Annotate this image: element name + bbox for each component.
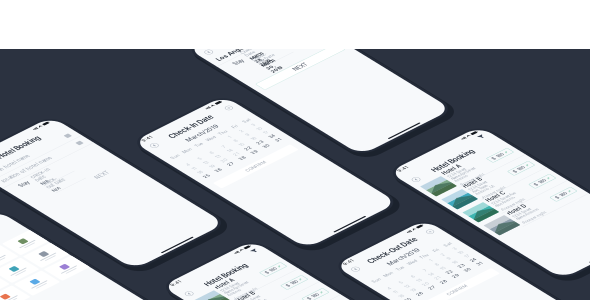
staticText: 8: [207, 209, 211, 216]
staticText: 27: [173, 236, 180, 243]
staticText: Check-In Date: [220, 91, 242, 104]
staticText: 16: [222, 218, 228, 225]
staticText: 2: [223, 200, 227, 207]
staticText: 9:41: [194, 53, 206, 60]
staticText: 23: [221, 227, 229, 234]
staticText: March/2019: [172, 176, 213, 184]
staticText: Thu: [204, 190, 214, 196]
button[interactable]: $ 180: [476, 254, 504, 264]
button[interactable]: Add: [237, 158, 249, 170]
staticText: Check-In Date: [164, 159, 221, 169]
staticText: Tue: [172, 190, 181, 196]
staticText: Hotel B: [425, 242, 448, 249]
staticText: 9:41: [341, 270, 353, 277]
button[interactable]: $ 180: [476, 222, 504, 232]
staticText: NEXT: [239, 148, 256, 156]
staticText: Hotel C: [425, 276, 449, 283]
button[interactable]: Add: [439, 282, 451, 294]
staticText: N/A: [0, 262, 3, 269]
staticText: Price per night: [425, 271, 455, 276]
staticText: 1234 Street Ave Nice Antonio: [425, 285, 456, 295]
staticText: 9:41: [139, 147, 151, 154]
staticText: 10: [238, 209, 244, 216]
staticText: Check-Out Date: [220, 108, 243, 121]
button[interactable]: Back: [392, 197, 405, 210]
staticText: Hotel Booking: [421, 198, 476, 208]
staticText: NEXT: [40, 274, 57, 281]
staticText: Hotel A: [425, 210, 448, 218]
staticText: Price per night: [425, 239, 455, 244]
button[interactable]: Filter: [495, 187, 502, 194]
staticText: 22: [205, 227, 213, 234]
button[interactable]: NEXT: [193, 145, 301, 159]
button[interactable]: CONFIRM: [141, 253, 245, 266]
button[interactable]: Back: [136, 158, 149, 171]
staticText: Check-Out Date: [0, 247, 16, 261]
staticText: 29: [205, 236, 213, 243]
staticText: 9:41: [168, 291, 180, 298]
staticText: 28: [189, 236, 197, 243]
staticText: March/2019: [374, 299, 415, 300]
staticText: location of hotel name: [0, 216, 33, 223]
staticText: March 30, 2019: [220, 122, 237, 143]
staticText: put in hotel name: [0, 198, 19, 206]
staticText: 1234 Street Name Apt Street Antonio: [425, 219, 456, 235]
staticText: $ 180: [480, 256, 495, 262]
staticText: Check-Out Date: [362, 283, 426, 293]
staticText: $ 180: [480, 224, 495, 231]
staticText: Location of Hotel: [213, 66, 281, 76]
staticText: Check-In Date: [0, 230, 17, 244]
staticText: 1234 Street Ave, Texas Antonio, LA: [425, 251, 449, 266]
button[interactable]: NEXT: [24, 271, 74, 283]
staticText: Stay: [201, 101, 213, 108]
staticText: 9:41: [395, 177, 407, 184]
staticText: Hotel Booking: [0, 180, 48, 190]
button[interactable]: Back: [338, 281, 351, 294]
staticText: March 28, 2019: [220, 105, 237, 126]
